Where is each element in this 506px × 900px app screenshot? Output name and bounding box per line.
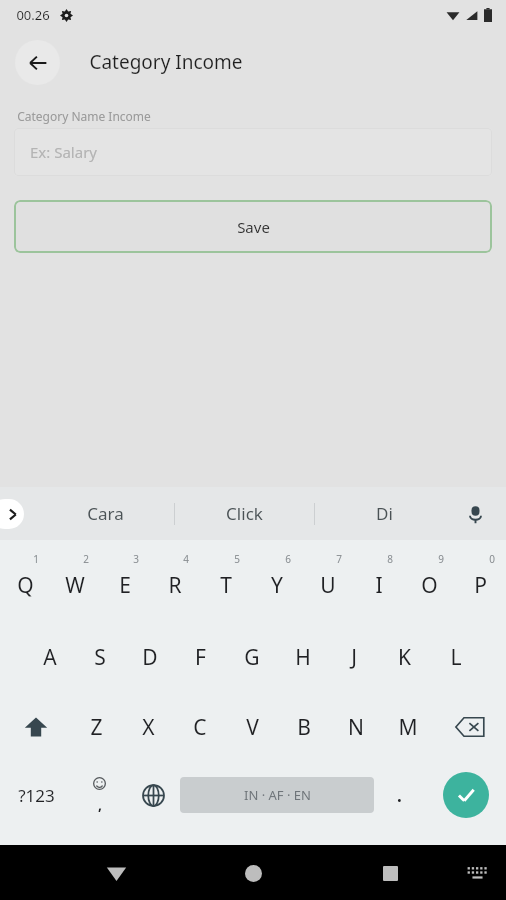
staticText: Q	[17, 571, 34, 600]
staticText: W	[65, 571, 85, 600]
button[interactable]: F	[175, 626, 226, 688]
button[interactable]: N	[330, 696, 382, 758]
button[interactable]: A	[25, 626, 75, 688]
button[interactable]: Switch keyboard	[460, 856, 494, 890]
staticText: I	[375, 571, 383, 600]
staticText: Category Name Income	[17, 108, 151, 124]
staticText: Click	[226, 502, 263, 525]
button[interactable]: L	[430, 626, 481, 688]
button[interactable]: P	[455, 546, 506, 618]
button[interactable]: Home	[232, 852, 274, 894]
button[interactable]: Di	[315, 487, 454, 540]
staticText: 5	[234, 552, 240, 566]
staticText: 7	[336, 552, 342, 566]
staticText: L	[450, 643, 462, 672]
staticText: Ex: Salary	[30, 142, 97, 162]
button[interactable]: Click	[175, 487, 314, 540]
staticText: .	[397, 784, 402, 807]
staticText: 3	[133, 552, 139, 566]
button[interactable]: IN · AF · EN	[180, 762, 374, 828]
button[interactable]: Cara	[36, 487, 174, 540]
staticText: R	[168, 571, 182, 600]
staticText: T	[220, 571, 232, 600]
staticText: M	[398, 713, 418, 742]
staticText: 8	[387, 552, 393, 566]
button[interactable]: Backspace	[434, 696, 506, 758]
button[interactable]: K	[379, 626, 430, 688]
button[interactable]: D	[125, 626, 175, 688]
button[interactable]: J	[328, 626, 379, 688]
staticText: 0	[489, 552, 495, 566]
staticText: D	[142, 643, 158, 672]
staticText: O	[421, 571, 438, 600]
staticText: ,	[98, 795, 102, 814]
staticText: IN · AF · EN	[244, 786, 311, 804]
staticText: J	[351, 643, 357, 672]
button[interactable]: E	[100, 546, 150, 618]
button[interactable]: R	[150, 546, 200, 618]
button[interactable]: X	[122, 696, 174, 758]
button[interactable]: Ex: Salary	[14, 128, 492, 176]
button[interactable]: W	[50, 546, 100, 618]
staticText: 00.26	[16, 6, 50, 24]
button[interactable]: I	[353, 546, 404, 618]
staticText: A	[43, 643, 57, 672]
button[interactable]: Emoji and comma	[72, 762, 126, 828]
staticText: E	[119, 571, 131, 600]
button[interactable]: Voice input	[458, 497, 492, 531]
staticText: S	[94, 643, 106, 672]
staticText: B	[297, 713, 311, 742]
button[interactable]: .	[374, 762, 425, 828]
staticText: Category Income	[89, 49, 243, 75]
staticText: Z	[90, 713, 103, 742]
staticText: U	[320, 571, 336, 600]
staticText: V	[246, 713, 259, 742]
button[interactable]: T	[200, 546, 251, 618]
button[interactable]: Recent apps	[369, 852, 411, 894]
staticText: H	[295, 643, 311, 672]
staticText: C	[193, 713, 207, 742]
staticText: P	[474, 571, 487, 600]
button[interactable]: M	[382, 696, 434, 758]
staticText: 9	[438, 552, 444, 566]
button[interactable]: Q	[0, 546, 50, 618]
button[interactable]: Expand toolbar	[0, 499, 24, 529]
staticText: 4	[183, 552, 189, 566]
button[interactable]: G	[226, 626, 277, 688]
button[interactable]: S	[75, 626, 125, 688]
button[interactable]: Enter	[443, 772, 489, 818]
button[interactable]: Back	[15, 40, 60, 85]
staticText: N	[348, 713, 364, 742]
button[interactable]: H	[277, 626, 328, 688]
button[interactable]: C	[174, 696, 226, 758]
button[interactable]: Save	[14, 200, 492, 253]
button[interactable]: ?123	[0, 762, 72, 828]
button[interactable]: U	[302, 546, 353, 618]
button[interactable]: Hide keyboard	[95, 852, 137, 894]
staticText: X	[142, 713, 155, 742]
staticText: 1	[33, 552, 39, 566]
button[interactable]: V	[226, 696, 278, 758]
staticText: 6	[285, 552, 291, 566]
staticText: Cara	[87, 502, 124, 525]
staticText: Save	[237, 217, 270, 237]
button[interactable]: Change language	[126, 762, 180, 828]
button[interactable]: Z	[71, 696, 122, 758]
staticText: F	[195, 643, 206, 672]
button[interactable]: O	[404, 546, 455, 618]
button[interactable]: Y	[251, 546, 302, 618]
staticText: ?123	[18, 784, 55, 807]
button[interactable]: B	[278, 696, 330, 758]
staticText: G	[244, 643, 260, 672]
staticText: K	[398, 643, 411, 672]
staticText: Y	[271, 571, 283, 600]
staticText: Di	[376, 502, 393, 525]
button[interactable]: Shift	[0, 696, 71, 758]
staticText: 2	[83, 552, 89, 566]
